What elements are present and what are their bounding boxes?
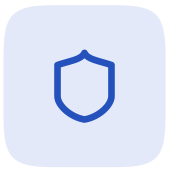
button[interactable]: Security [3,5,165,167]
